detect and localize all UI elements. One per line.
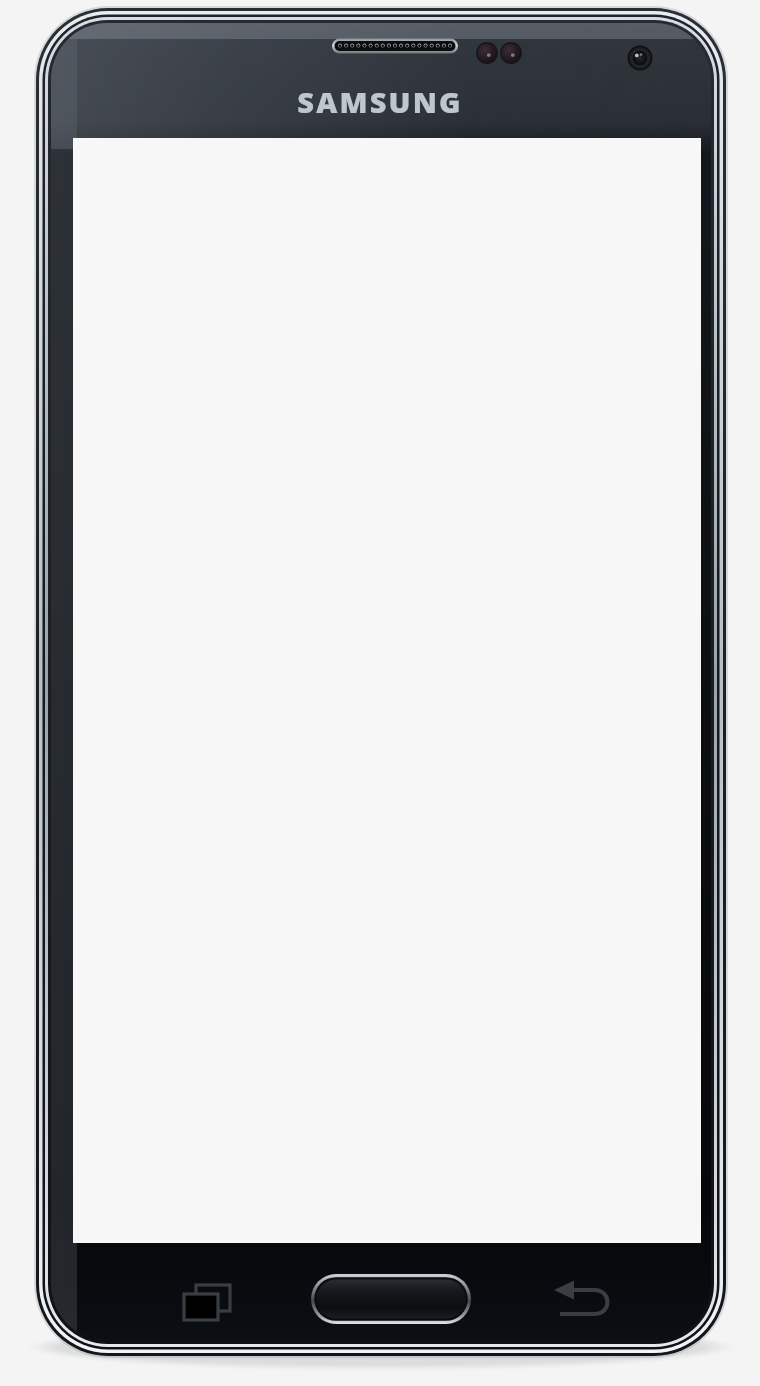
button[interactable]: Recent apps [150, 1268, 250, 1340]
button[interactable]: Home [311, 1274, 471, 1324]
button[interactable]: Back [525, 1268, 625, 1340]
staticText: SAMSUNG [297, 82, 463, 114]
